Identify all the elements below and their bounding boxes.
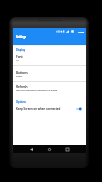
staticText: Buttons xyxy=(16,71,28,75)
staticText: Font xyxy=(16,55,23,59)
staticText: Stay not sensitive to Remote NS mode xyxy=(16,89,58,92)
button[interactable]: Font xyxy=(13,55,86,65)
button[interactable]: Home xyxy=(46,146,53,153)
staticText: Settings xyxy=(16,35,27,39)
staticText: 24ms xyxy=(16,75,22,78)
staticText: Font xyxy=(16,55,23,59)
staticText: Buttons xyxy=(16,71,28,75)
staticText: Stay not sensitive to Remote NS mode xyxy=(16,89,58,92)
button[interactable]: Refresh xyxy=(13,85,86,95)
staticText: Refresh xyxy=(16,85,28,89)
staticText: 12:30 xyxy=(78,30,85,33)
staticText: Keep Screen on when connected xyxy=(16,107,61,111)
staticText: Refresh xyxy=(16,85,28,89)
button[interactable]: Keep Screen on when connected xyxy=(13,105,86,112)
button[interactable]: Options xyxy=(16,100,26,104)
staticText: Keep Screen on when connected xyxy=(16,107,61,111)
staticText: 14 xyxy=(16,59,19,62)
staticText: Display xyxy=(16,48,26,52)
staticText: 24ms xyxy=(16,75,22,78)
staticText: Settings xyxy=(16,35,27,39)
staticText: Options xyxy=(16,100,26,104)
staticText: Display xyxy=(16,48,26,52)
button[interactable]: Buttons xyxy=(13,71,86,81)
button[interactable]: Display xyxy=(16,48,26,52)
staticText: Options xyxy=(16,100,26,104)
button[interactable]: Recent apps xyxy=(64,146,71,153)
staticText: 14 xyxy=(16,59,19,62)
staticText: 12:30 xyxy=(78,30,85,33)
button[interactable]: Back xyxy=(28,146,35,153)
